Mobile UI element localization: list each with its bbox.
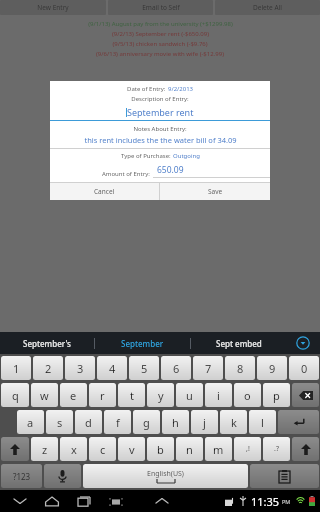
button[interactable]: Clipboard [250,464,319,488]
button[interactable]: 4 [97,356,127,380]
staticText: Save [208,187,223,196]
staticText: u [186,388,193,403]
button[interactable]: f [104,410,131,434]
staticText: l [261,415,264,430]
button[interactable]: 0 [289,356,319,380]
button[interactable]: Backspace [292,383,319,407]
button[interactable]: a [17,410,44,434]
button[interactable]: n [176,437,203,461]
button[interactable]: Type of Purchase: [50,152,270,160]
staticText: ?123 [13,471,31,482]
button[interactable]: Shift [1,437,29,461]
staticText: e [70,388,77,403]
button[interactable]: Home [42,491,62,511]
button[interactable]: s [46,410,73,434]
button[interactable]: Screenshot [106,491,126,511]
staticText: j [203,415,206,430]
button[interactable]: t [118,383,145,407]
button[interactable]: Sept embed [191,332,286,354]
staticText: Email to Self [142,3,180,12]
staticText: .? [274,444,279,454]
staticText: 9 [269,361,276,376]
button[interactable]: ?123 [1,464,42,488]
staticText: 9/2/2013 [168,85,194,93]
button[interactable]: 650.09 [153,164,270,178]
button[interactable]: x [60,437,87,461]
button[interactable]: New Entry [0,0,106,15]
button[interactable]: .? [263,437,290,461]
staticText: 650.09 [157,164,184,176]
staticText: Description of Entry: [50,95,270,103]
button[interactable]: 9 [257,356,287,380]
button[interactable]: September's [0,332,94,354]
button[interactable]: z [31,437,58,461]
button[interactable]: p [263,383,290,407]
button[interactable]: Cancel [50,183,159,200]
staticText: w [40,388,49,403]
staticText: o [244,388,251,403]
button[interactable]: this rent includes the the water bill of… [50,135,270,145]
staticText: Cancel [94,187,115,196]
staticText: v [129,442,135,457]
button[interactable]: Hide keyboard [10,491,30,511]
button[interactable]: 6 [161,356,191,380]
staticText: 7 [205,361,212,376]
staticText: English(US) [147,469,184,479]
staticText: a [27,415,34,430]
button[interactable]: r [89,383,116,407]
staticText: q [12,388,19,403]
staticText: (9/1/13) August pay from the university … [88,20,233,28]
staticText: c [100,442,106,457]
button[interactable]: ,! [234,437,261,461]
staticText: this rent includes the the water bill of… [84,135,237,145]
button[interactable]: k [220,410,247,434]
button[interactable]: Recent apps [74,491,94,511]
staticText: (9/5/13) chicken sandwich (-$9.76) [112,40,208,48]
staticText: k [231,415,237,430]
staticText: (9/6/13) anniversary movie with wife (-$… [96,50,224,58]
button[interactable]: September [95,332,190,354]
staticText: x [71,442,77,457]
staticText: 0 [301,361,308,376]
staticText: Date of Entry: [127,85,168,93]
button[interactable]: h [162,410,189,434]
button[interactable]: 7 [193,356,223,380]
button[interactable]: w [31,383,58,407]
button[interactable]: 2 [33,356,63,380]
button[interactable]: c [89,437,116,461]
button[interactable]: Enter [278,410,319,434]
button[interactable]: 8 [225,356,255,380]
button[interactable]: o [234,383,261,407]
staticText: 11:35 [251,494,280,509]
staticText: g [143,415,150,430]
button[interactable]: j [191,410,218,434]
button[interactable]: d [75,410,102,434]
button[interactable]: v [118,437,145,461]
button[interactable]: i [205,383,232,407]
button[interactable]: 5 [129,356,159,380]
button[interactable]: 3 [65,356,95,380]
button[interactable]: Save [160,183,270,200]
button[interactable]: Delete All [215,0,320,15]
button[interactable]: Expand suggestions [286,332,320,354]
button[interactable]: English(US) [83,464,248,488]
button[interactable]: g [133,410,160,434]
button[interactable]: u [176,383,203,407]
button[interactable]: 1 [1,356,31,380]
button[interactable]: Email to Self [108,0,213,15]
button[interactable]: m [205,437,232,461]
staticText: 4 [109,361,116,376]
button[interactable]: Voice input [44,464,81,488]
staticText: b [157,442,164,457]
staticText: Outgoing [173,152,200,160]
button[interactable]: l [249,410,276,434]
button[interactable]: Show navigation [152,491,172,511]
button[interactable]: e [60,383,87,407]
button[interactable]: September rent [50,106,270,120]
staticText: s [57,415,63,430]
button[interactable]: b [147,437,174,461]
button[interactable]: q [1,383,29,407]
button[interactable]: y [147,383,174,407]
staticText: i [217,388,220,403]
button[interactable]: Shift [292,437,319,461]
